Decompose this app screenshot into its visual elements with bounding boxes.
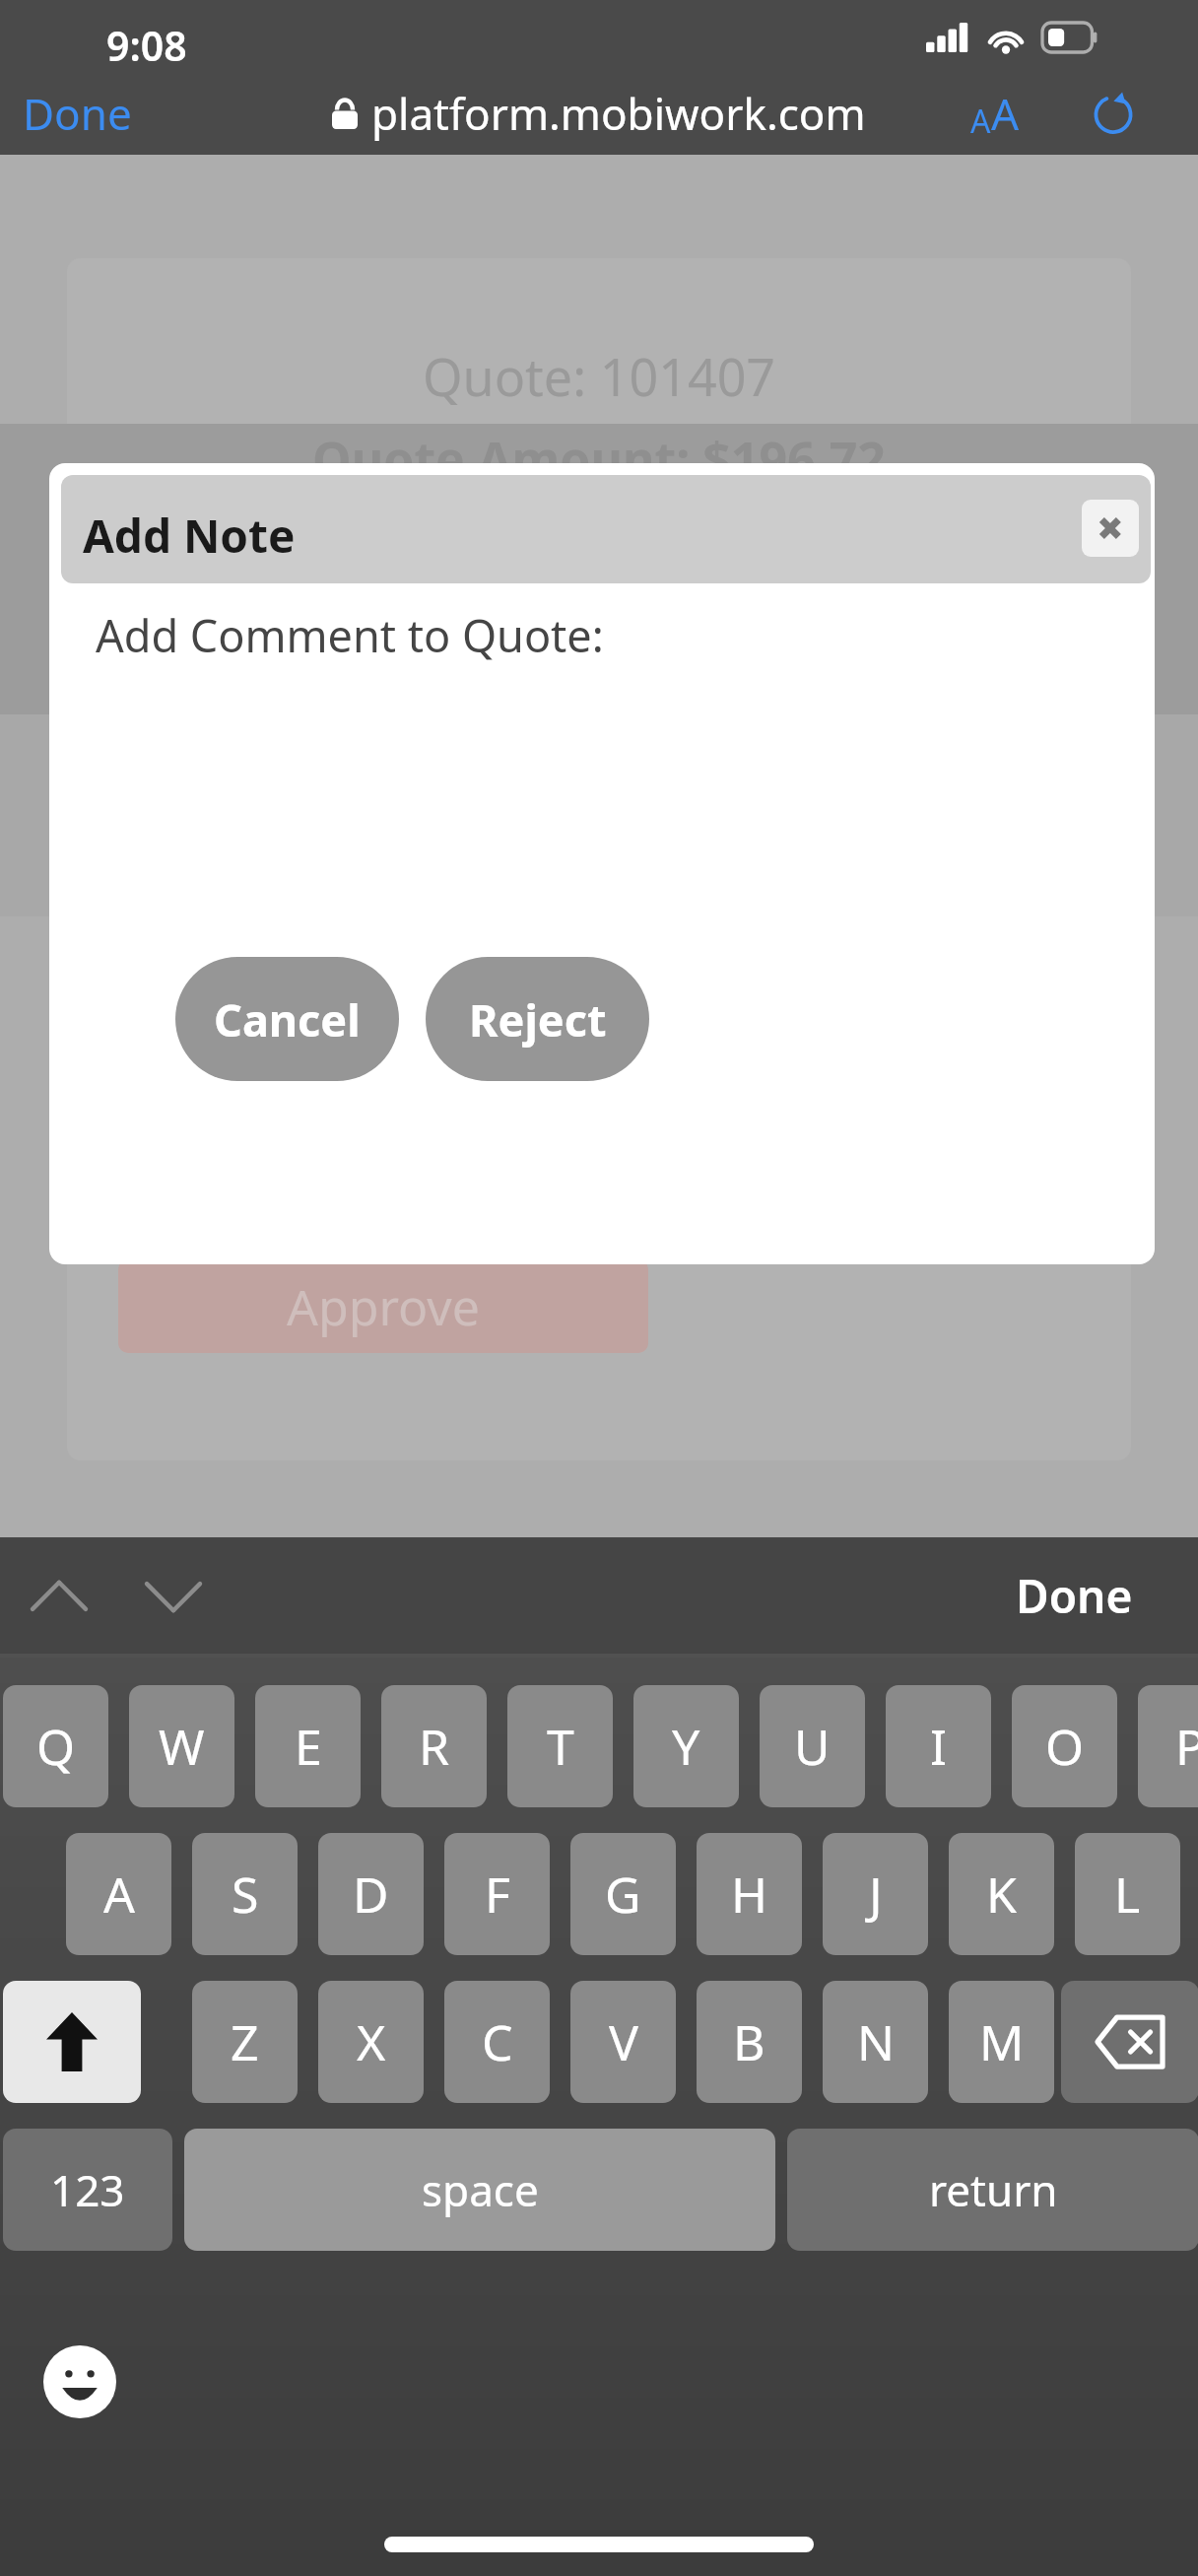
button[interactable]: Cancel: [175, 957, 399, 1081]
staticText: Quote: 101407: [0, 341, 1198, 411]
staticText: Add Comment to Quote:: [96, 605, 604, 665]
button[interactable]: O: [1012, 1685, 1117, 1807]
staticText: M: [979, 2008, 1025, 2075]
button[interactable]: Reject: [426, 957, 649, 1081]
staticText: Done: [1016, 1565, 1133, 1627]
staticText: 9:08: [106, 18, 187, 73]
button[interactable]: H: [697, 1833, 802, 1955]
button[interactable]: N: [823, 1981, 928, 2103]
button[interactable]: L: [1075, 1833, 1180, 1955]
button[interactable]: E: [255, 1685, 361, 1807]
button[interactable]: C: [444, 1981, 550, 2103]
staticText: K: [986, 1861, 1017, 1928]
staticText: J: [869, 1861, 883, 1928]
staticText: B: [733, 2008, 765, 2075]
button[interactable]: Close: [1082, 500, 1139, 557]
button[interactable]: F: [444, 1833, 550, 1955]
staticText: Reject: [469, 989, 607, 1050]
button[interactable]: R: [381, 1685, 487, 1807]
button[interactable]: V: [570, 1981, 676, 2103]
staticText: Z: [231, 2008, 259, 2075]
button[interactable]: Approve: [118, 1259, 648, 1353]
staticText: return: [929, 2160, 1058, 2219]
staticText: H: [731, 1861, 768, 1928]
button[interactable]: X: [318, 1981, 424, 2103]
staticText: S: [232, 1861, 259, 1928]
button[interactable]: A: [66, 1833, 171, 1955]
button[interactable]: Done: [985, 1537, 1163, 1654]
button[interactable]: T: [507, 1685, 613, 1807]
staticText: ✖: [1097, 509, 1124, 547]
button[interactable]: J: [823, 1833, 928, 1955]
staticText: O: [1045, 1713, 1085, 1780]
button[interactable]: Emoji: [35, 2338, 124, 2426]
button[interactable]: S: [192, 1833, 298, 1955]
button[interactable]: space: [184, 2129, 775, 2251]
staticText: Done: [23, 84, 132, 143]
staticText: A: [970, 100, 991, 143]
staticText: D: [353, 1861, 389, 1928]
staticText: platform.mobiwork.com: [371, 84, 866, 143]
staticText: E: [295, 1713, 322, 1780]
staticText: U: [794, 1713, 831, 1780]
staticText: T: [547, 1713, 574, 1780]
staticText: Approve: [287, 1273, 480, 1340]
button[interactable]: I: [886, 1685, 991, 1807]
staticText: A: [991, 84, 1020, 143]
staticText: space: [422, 2160, 539, 2219]
button[interactable]: U: [760, 1685, 865, 1807]
button[interactable]: Previous field: [22, 1559, 97, 1634]
staticText: W: [159, 1713, 205, 1780]
staticText: A: [103, 1861, 135, 1928]
staticText: G: [605, 1861, 641, 1928]
staticText: N: [857, 2008, 895, 2075]
button[interactable]: Z: [192, 1981, 298, 2103]
staticText: P: [1175, 1713, 1198, 1780]
button[interactable]: G: [570, 1833, 676, 1955]
button[interactable]: Done: [18, 71, 136, 155]
button[interactable]: 123: [3, 2129, 172, 2251]
staticText: Q: [36, 1713, 76, 1780]
staticText: Cancel: [214, 989, 361, 1050]
button[interactable]: Next field: [136, 1559, 211, 1634]
staticText: R: [419, 1713, 450, 1780]
button[interactable]: B: [697, 1981, 802, 2103]
button[interactable]: Q: [3, 1685, 108, 1807]
staticText: Y: [672, 1713, 700, 1780]
button[interactable]: M: [949, 1981, 1054, 2103]
button[interactable]: Y: [633, 1685, 739, 1807]
button[interactable]: D: [318, 1833, 424, 1955]
staticText: V: [609, 2008, 638, 2075]
staticText: X: [357, 2008, 386, 2075]
staticText: I: [930, 1713, 947, 1780]
button[interactable]: return: [787, 2129, 1198, 2251]
button[interactable]: Reload: [1066, 71, 1161, 155]
button[interactable]: K: [949, 1833, 1054, 1955]
button[interactable]: Text size: [946, 71, 1044, 155]
button[interactable]: Shift: [3, 1981, 141, 2103]
staticText: L: [1114, 1861, 1141, 1928]
staticText: 123: [50, 2160, 125, 2219]
staticText: F: [485, 1861, 510, 1928]
staticText: C: [482, 2008, 513, 2075]
button[interactable]: P: [1138, 1685, 1198, 1807]
button[interactable]: W: [129, 1685, 234, 1807]
staticText: Add Note: [83, 505, 296, 567]
button[interactable]: Backspace: [1061, 1981, 1198, 2103]
staticText: Quote Amount: $196.72: [0, 426, 1198, 493]
